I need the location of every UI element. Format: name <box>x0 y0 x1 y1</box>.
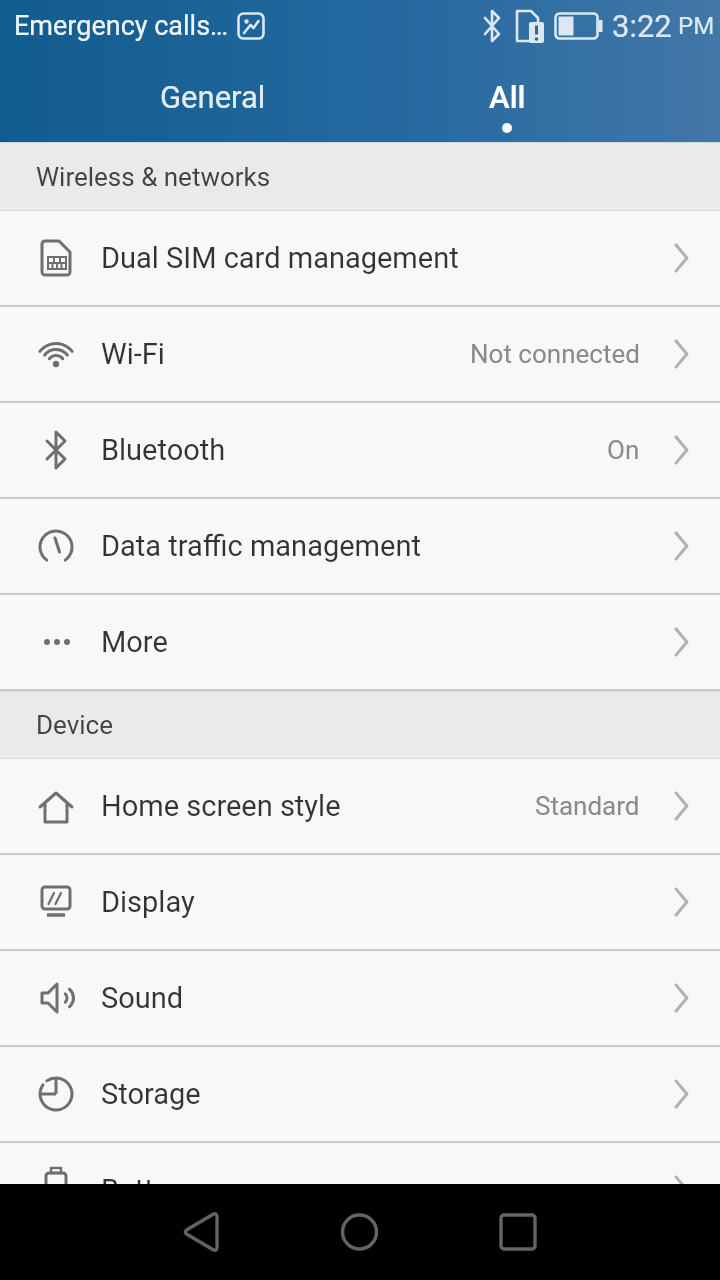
button[interactable]: Home screen style <box>0 759 720 855</box>
button[interactable]: Bluetooth <box>0 403 720 499</box>
staticText: All <box>489 79 526 115</box>
button[interactable]: General <box>66 52 360 142</box>
staticText: Sound <box>101 981 184 1015</box>
staticText: Not connected <box>470 339 640 369</box>
button[interactable]: Display <box>0 855 720 951</box>
button[interactable]: More <box>0 595 720 691</box>
button[interactable] <box>240 1184 480 1280</box>
staticText: Standard <box>535 791 640 821</box>
button[interactable] <box>0 1184 240 1280</box>
staticText: Data traffic management <box>101 529 421 563</box>
button[interactable]: Battery manager <box>0 1143 720 1239</box>
button[interactable]: Data traffic management <box>0 499 720 595</box>
staticText: PM <box>678 12 715 40</box>
staticText: Battery manager <box>101 1173 315 1207</box>
button[interactable]: Wi-Fi <box>0 307 720 403</box>
staticText: On <box>607 435 640 465</box>
staticText: Storage <box>101 1077 201 1111</box>
staticText: Home screen style <box>101 789 341 823</box>
staticText: Device <box>36 710 113 740</box>
button[interactable]: All <box>360 52 654 142</box>
button[interactable]: Sound <box>0 951 720 1047</box>
staticText: Emergency calls… <box>14 10 229 42</box>
staticText: Display <box>101 885 195 919</box>
button[interactable] <box>480 1184 720 1280</box>
staticText: General <box>160 79 266 115</box>
staticText: Wi-Fi <box>101 337 165 371</box>
staticText: 3:22 <box>612 8 672 44</box>
staticText: Wireless & networks <box>36 162 271 192</box>
staticText: More <box>101 625 168 659</box>
staticText: Bluetooth <box>101 433 226 467</box>
button[interactable]: Storage <box>0 1047 720 1143</box>
staticText: Dual SIM card management <box>101 241 459 275</box>
button[interactable]: Dual SIM card management <box>0 211 720 307</box>
